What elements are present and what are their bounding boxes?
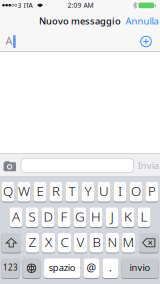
button[interactable]: Z	[26, 232, 39, 253]
staticText: A:	[5, 33, 15, 48]
staticText: .	[109, 260, 112, 275]
button[interactable]: F	[57, 207, 70, 227]
staticText: X	[45, 233, 52, 251]
staticText: E	[36, 182, 43, 200]
button[interactable]: spazio	[44, 258, 80, 278]
button[interactable]: U	[97, 181, 110, 202]
button[interactable]: @	[83, 258, 99, 278]
button[interactable]: N	[106, 232, 119, 253]
button[interactable]: V	[74, 232, 87, 253]
staticText: spazio	[49, 261, 76, 274]
button[interactable]: Message field	[21, 158, 133, 173]
button[interactable]: invio	[121, 258, 158, 278]
staticText: Annulla	[125, 15, 158, 27]
button[interactable]: .	[102, 258, 118, 278]
staticText: O	[131, 182, 141, 200]
button[interactable]: X	[42, 232, 55, 253]
button[interactable]: K	[121, 207, 134, 227]
button[interactable]: J	[105, 207, 118, 227]
staticText: V	[76, 233, 84, 251]
button[interactable]: P	[145, 181, 158, 202]
staticText: Nuovo messaggio	[39, 15, 121, 27]
button[interactable]: O	[129, 181, 142, 202]
staticText: L	[140, 208, 147, 225]
staticText: 2:09 AM	[67, 1, 93, 10]
staticText: Z	[28, 233, 36, 251]
staticText: F	[60, 208, 67, 225]
button[interactable]: Camera	[3, 160, 16, 171]
staticText: S	[28, 208, 35, 225]
button[interactable]: L	[137, 207, 150, 227]
staticText: G	[75, 208, 85, 225]
button[interactable]: Q	[1, 181, 14, 202]
button[interactable]: Invia	[138, 159, 159, 172]
button[interactable]: Annulla	[125, 15, 158, 27]
button[interactable]: S	[25, 207, 38, 227]
button[interactable]: A	[9, 207, 22, 227]
staticText: Y	[84, 182, 91, 200]
button[interactable]: D	[41, 207, 54, 227]
staticText: I	[118, 182, 122, 200]
staticText: B	[92, 233, 100, 251]
staticText: D	[43, 208, 52, 225]
button[interactable]: I	[113, 181, 126, 202]
staticText: P	[148, 182, 156, 200]
button[interactable]: E	[33, 181, 46, 202]
button[interactable]: Y	[81, 181, 94, 202]
button[interactable]: B	[90, 232, 103, 253]
button[interactable]: R	[49, 181, 62, 202]
staticText: N	[107, 233, 117, 251]
staticText: 3 ITA	[17, 1, 32, 10]
staticText: W	[18, 182, 30, 200]
button[interactable]: M	[122, 232, 135, 253]
button[interactable]: 123	[1, 258, 19, 278]
staticText: C	[60, 233, 68, 251]
button[interactable]: globe	[22, 258, 40, 278]
staticText: A	[12, 208, 20, 225]
button[interactable]: T	[65, 181, 78, 202]
staticText: invio	[129, 261, 150, 274]
staticText: @	[86, 260, 96, 275]
staticText: 123	[3, 262, 18, 273]
staticText: J	[110, 208, 113, 225]
button[interactable]: H	[89, 207, 102, 227]
button[interactable]: shift	[1, 232, 21, 253]
staticText: K	[124, 208, 132, 225]
staticText: H	[91, 208, 101, 225]
staticText: Q	[3, 182, 13, 200]
button[interactable]: G	[73, 207, 86, 227]
button[interactable]: Add contact	[140, 36, 152, 47]
staticText: U	[99, 182, 109, 200]
button[interactable]: delete	[139, 232, 158, 253]
staticText: R	[52, 182, 60, 200]
staticText: M	[122, 233, 134, 251]
button[interactable]: W	[17, 181, 30, 202]
staticText: T	[68, 182, 75, 200]
staticText: Invia	[138, 159, 159, 172]
button[interactable]: C	[58, 232, 71, 253]
